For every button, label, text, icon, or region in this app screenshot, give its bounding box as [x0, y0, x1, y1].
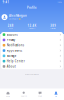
button[interactable]: Me: [48, 90, 64, 99]
staticText: 389: [50, 24, 56, 27]
button[interactable]: Home: [0, 90, 16, 99]
button[interactable]: About: [1, 64, 63, 69]
staticText: Search: [21, 95, 27, 97]
button[interactable]: Account: [1, 32, 63, 37]
staticText: alex@mail.com: [9, 18, 18, 20]
staticText: Followers: [28, 28, 35, 29]
staticText: Account: [7, 33, 18, 36]
staticText: 100%: [58, 1, 62, 3]
staticText: 9:41: [2, 0, 9, 4]
staticText: Storage: [7, 54, 17, 58]
staticText: Following: [50, 28, 56, 29]
button[interactable]: Notifications: [1, 43, 63, 48]
button[interactable]: Help Center: [1, 58, 63, 64]
staticText: Appearance: [7, 49, 23, 52]
staticText: Notifications: [7, 43, 24, 47]
staticText: Me: [55, 95, 57, 97]
button[interactable]: Chats: [32, 90, 48, 99]
staticText: Alex Morgan: [9, 14, 27, 18]
staticText: Home: [6, 95, 10, 97]
staticText: Posts: [9, 28, 13, 29]
staticText: 248: [8, 24, 14, 27]
staticText: Profile: [27, 6, 37, 9]
staticText: Help Center: [7, 59, 25, 63]
staticText: Privacy: [7, 38, 15, 42]
staticText: Chats: [38, 95, 42, 97]
button[interactable]: Search: [16, 90, 32, 99]
button[interactable]: Privacy: [1, 37, 63, 43]
staticText: Privacy · Terms · v2.4: [25, 74, 39, 75]
button[interactable]: Appearance: [1, 48, 63, 53]
button[interactable]: Storage: [1, 53, 63, 58]
staticText: 12.4K: [27, 24, 36, 27]
staticText: About: [7, 65, 16, 68]
